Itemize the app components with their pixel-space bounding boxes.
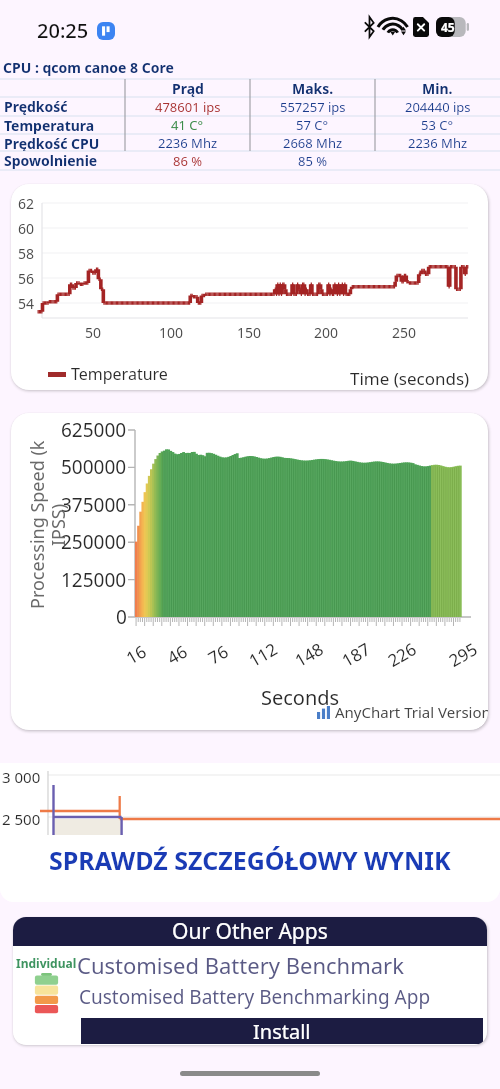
other: App icon bbox=[33, 973, 60, 1015]
staticText: 112 bbox=[244, 637, 281, 671]
staticText: 58 bbox=[18, 244, 35, 262]
staticText: Individual bbox=[16, 955, 77, 971]
staticText: 41 C° bbox=[171, 116, 204, 134]
staticText: IPSS) bbox=[46, 503, 71, 546]
staticText: Processing Speed (k bbox=[25, 440, 50, 609]
staticText: 56 bbox=[18, 269, 35, 287]
staticText: 148 bbox=[290, 637, 327, 671]
staticText: 0 bbox=[116, 604, 127, 628]
staticText: 125000 bbox=[61, 567, 127, 591]
staticText: AnyChart Trial Version bbox=[335, 702, 488, 722]
staticText: 57 C° bbox=[296, 116, 329, 134]
other: Notification bbox=[97, 22, 115, 40]
staticText: Temperature bbox=[71, 363, 168, 385]
button[interactable]: SPRAWDŹ SZCZEGÓŁOWY WYNIK bbox=[0, 836, 500, 902]
staticText: Seconds bbox=[261, 684, 340, 711]
staticText: 45 bbox=[441, 19, 455, 35]
staticText: 2236 Mhz bbox=[408, 134, 468, 151]
staticText: 557257 ips bbox=[280, 98, 346, 116]
staticText: 500000 bbox=[61, 454, 127, 478]
button[interactable]: Install bbox=[81, 1018, 483, 1044]
staticText: 16 bbox=[122, 639, 150, 669]
staticText: 20:25 bbox=[37, 17, 89, 44]
staticText: 46 bbox=[163, 639, 191, 669]
staticText: Install bbox=[253, 1018, 311, 1044]
staticText: Customised Battery Benchmarking App bbox=[79, 984, 431, 1010]
staticText: 200 bbox=[314, 323, 339, 342]
staticText: 150 bbox=[237, 323, 262, 342]
staticText: 54 bbox=[18, 294, 35, 312]
staticText: 478601 ips bbox=[155, 98, 221, 116]
staticText: 76 bbox=[204, 639, 232, 669]
staticText: Prędkość bbox=[4, 97, 68, 116]
other: Battery 45 percent bbox=[436, 17, 469, 37]
other: Bluetooth on bbox=[364, 17, 375, 37]
staticText: 86 % bbox=[173, 152, 203, 170]
staticText: 295 bbox=[444, 637, 481, 671]
staticText: SPRAWDŹ SZCZEGÓŁOWY WYNIK bbox=[49, 843, 451, 877]
staticText: 226 bbox=[383, 637, 420, 671]
staticText: Customised Battery Benchmark bbox=[77, 950, 404, 980]
staticText: 250 bbox=[392, 323, 417, 342]
staticText: 85 % bbox=[298, 152, 328, 170]
staticText: 2668 Mhz bbox=[283, 134, 343, 151]
staticText: 2 500 bbox=[2, 809, 41, 829]
staticText: 2236 Mhz bbox=[158, 134, 218, 151]
staticText: 204440 ips bbox=[405, 98, 471, 116]
staticText: Spowolnienie bbox=[4, 151, 98, 170]
staticText: CPU : qcom canoe 8 Core bbox=[3, 58, 174, 77]
staticText: 625000 bbox=[61, 417, 127, 441]
staticText: 100 bbox=[159, 323, 184, 342]
staticText: 50 bbox=[85, 323, 102, 342]
staticText: 187 bbox=[337, 637, 374, 671]
staticText: 60 bbox=[18, 219, 35, 237]
staticText: 3 000 bbox=[2, 767, 41, 787]
staticText: 250000 bbox=[61, 529, 127, 553]
button[interactable]: Temperature over time chart bbox=[11, 184, 488, 390]
button[interactable]: Processing speed chart bbox=[11, 413, 488, 730]
staticText: Min. bbox=[422, 79, 453, 97]
staticText: 53 C° bbox=[421, 116, 454, 134]
staticText: Temperatura bbox=[4, 116, 95, 134]
other: Wi-Fi connected bbox=[382, 18, 407, 37]
staticText: Prąd bbox=[172, 79, 204, 97]
staticText: Our Other Apps bbox=[172, 917, 328, 946]
staticText: Time (seconds) bbox=[350, 367, 470, 390]
other: No SIM card bbox=[413, 17, 429, 37]
staticText: Maks. bbox=[292, 79, 334, 97]
staticText: Prędkość CPU bbox=[4, 134, 100, 151]
button[interactable]: Our Other Apps bbox=[13, 917, 487, 946]
staticText: 375000 bbox=[61, 492, 127, 516]
staticText: 62 bbox=[18, 194, 35, 212]
